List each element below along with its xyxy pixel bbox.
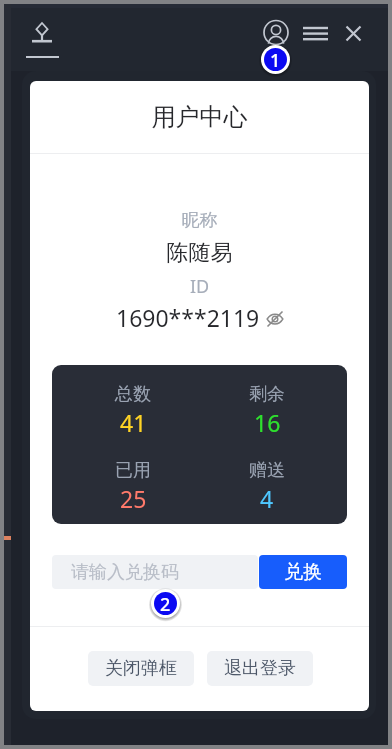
staticText: 已用	[115, 459, 151, 482]
button[interactable]: Toggle ID visibility	[266, 310, 284, 328]
staticText: 关闭弹框	[105, 657, 177, 680]
staticText: ID	[30, 274, 369, 299]
button[interactable]: Account	[262, 18, 290, 46]
staticText: 赠送	[249, 459, 285, 482]
button[interactable]: Close	[341, 21, 366, 46]
button[interactable]: Home	[30, 20, 54, 44]
staticText: 4	[260, 483, 274, 514]
button[interactable]: Menu	[301, 20, 330, 46]
staticText: 用户中心	[30, 102, 369, 132]
staticText: 退出登录	[224, 657, 296, 680]
staticText: 请输入兑换码	[71, 561, 179, 584]
staticText: 兑换	[284, 560, 322, 584]
staticText: 1690***2119	[116, 302, 260, 333]
staticText: 2	[160, 592, 171, 615]
button[interactable]: 请输入兑换码	[52, 555, 258, 589]
staticText: 昵称	[30, 209, 369, 232]
staticText: 16	[254, 407, 281, 438]
staticText: 总数	[115, 383, 151, 406]
button[interactable]: 关闭弹框	[88, 651, 194, 686]
staticText: 陈随易	[30, 239, 369, 267]
staticText: 剩余	[249, 383, 285, 406]
staticText: 41	[120, 407, 147, 438]
staticText: 1	[270, 48, 281, 71]
staticText: 25	[120, 483, 147, 514]
button[interactable]: 兑换	[259, 555, 347, 589]
button[interactable]: 退出登录	[207, 651, 313, 686]
